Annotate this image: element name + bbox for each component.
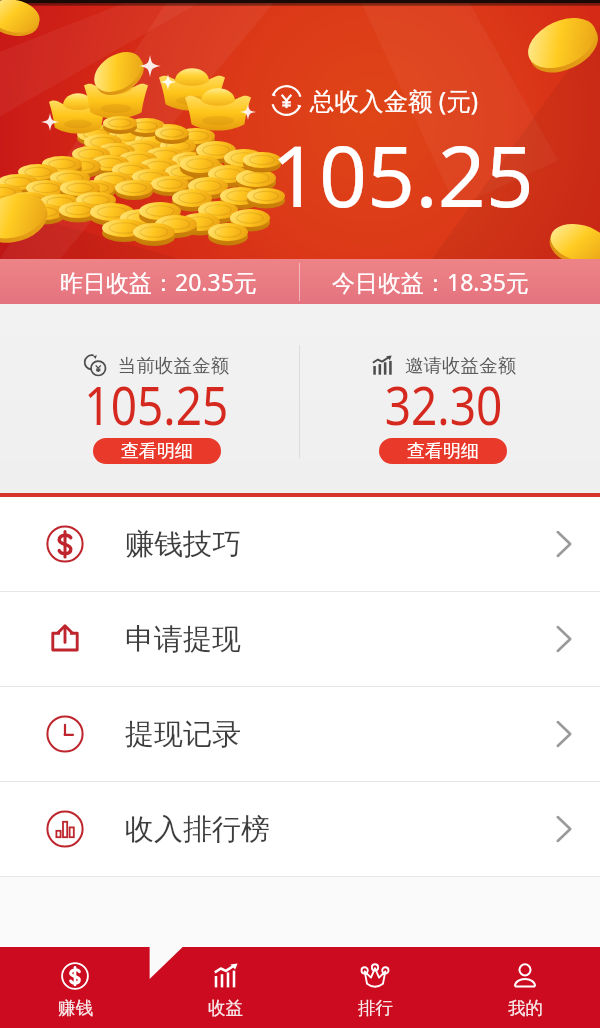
staticText: 赚钱	[58, 997, 93, 1019]
button[interactable]: 收益	[150, 947, 300, 1028]
button[interactable]: 今日收益：18.35元	[300, 259, 600, 304]
staticText: 105.25	[84, 369, 229, 440]
staticText: 查看明细	[121, 440, 193, 463]
staticText: 收益	[208, 997, 243, 1019]
staticText: 排行	[358, 997, 393, 1019]
staticText: 今日收益：18.35元	[332, 266, 529, 297]
button[interactable]: 昨日收益：20.35元	[0, 259, 299, 304]
staticText: 申请提现	[125, 621, 241, 658]
staticText: 当前收益金额	[118, 354, 229, 377]
button[interactable]: 查看明细	[93, 438, 221, 464]
staticText: 我的	[508, 997, 543, 1019]
button[interactable]: 我的	[450, 947, 600, 1028]
staticText: 查看明细	[407, 440, 479, 463]
staticText: 提现记录	[125, 716, 241, 753]
staticText: 收入排行榜	[125, 811, 270, 848]
button[interactable]: 排行	[300, 947, 450, 1028]
staticText: 105.25	[271, 117, 534, 231]
button[interactable]: 提现记录	[0, 687, 600, 781]
staticText: 赚钱技巧	[125, 526, 241, 563]
staticText: 32.30	[385, 369, 502, 440]
button[interactable]: 赚钱技巧	[0, 497, 600, 591]
button[interactable]: 赚钱	[0, 947, 150, 1028]
button[interactable]: 申请提现	[0, 592, 600, 686]
staticText: 总收入金额 (元)	[310, 84, 479, 117]
staticText: 昨日收益：20.35元	[60, 266, 257, 297]
button[interactable]: 查看明细	[379, 438, 507, 464]
button[interactable]: 收入排行榜	[0, 782, 600, 876]
staticText: 邀请收益金额	[405, 354, 516, 377]
